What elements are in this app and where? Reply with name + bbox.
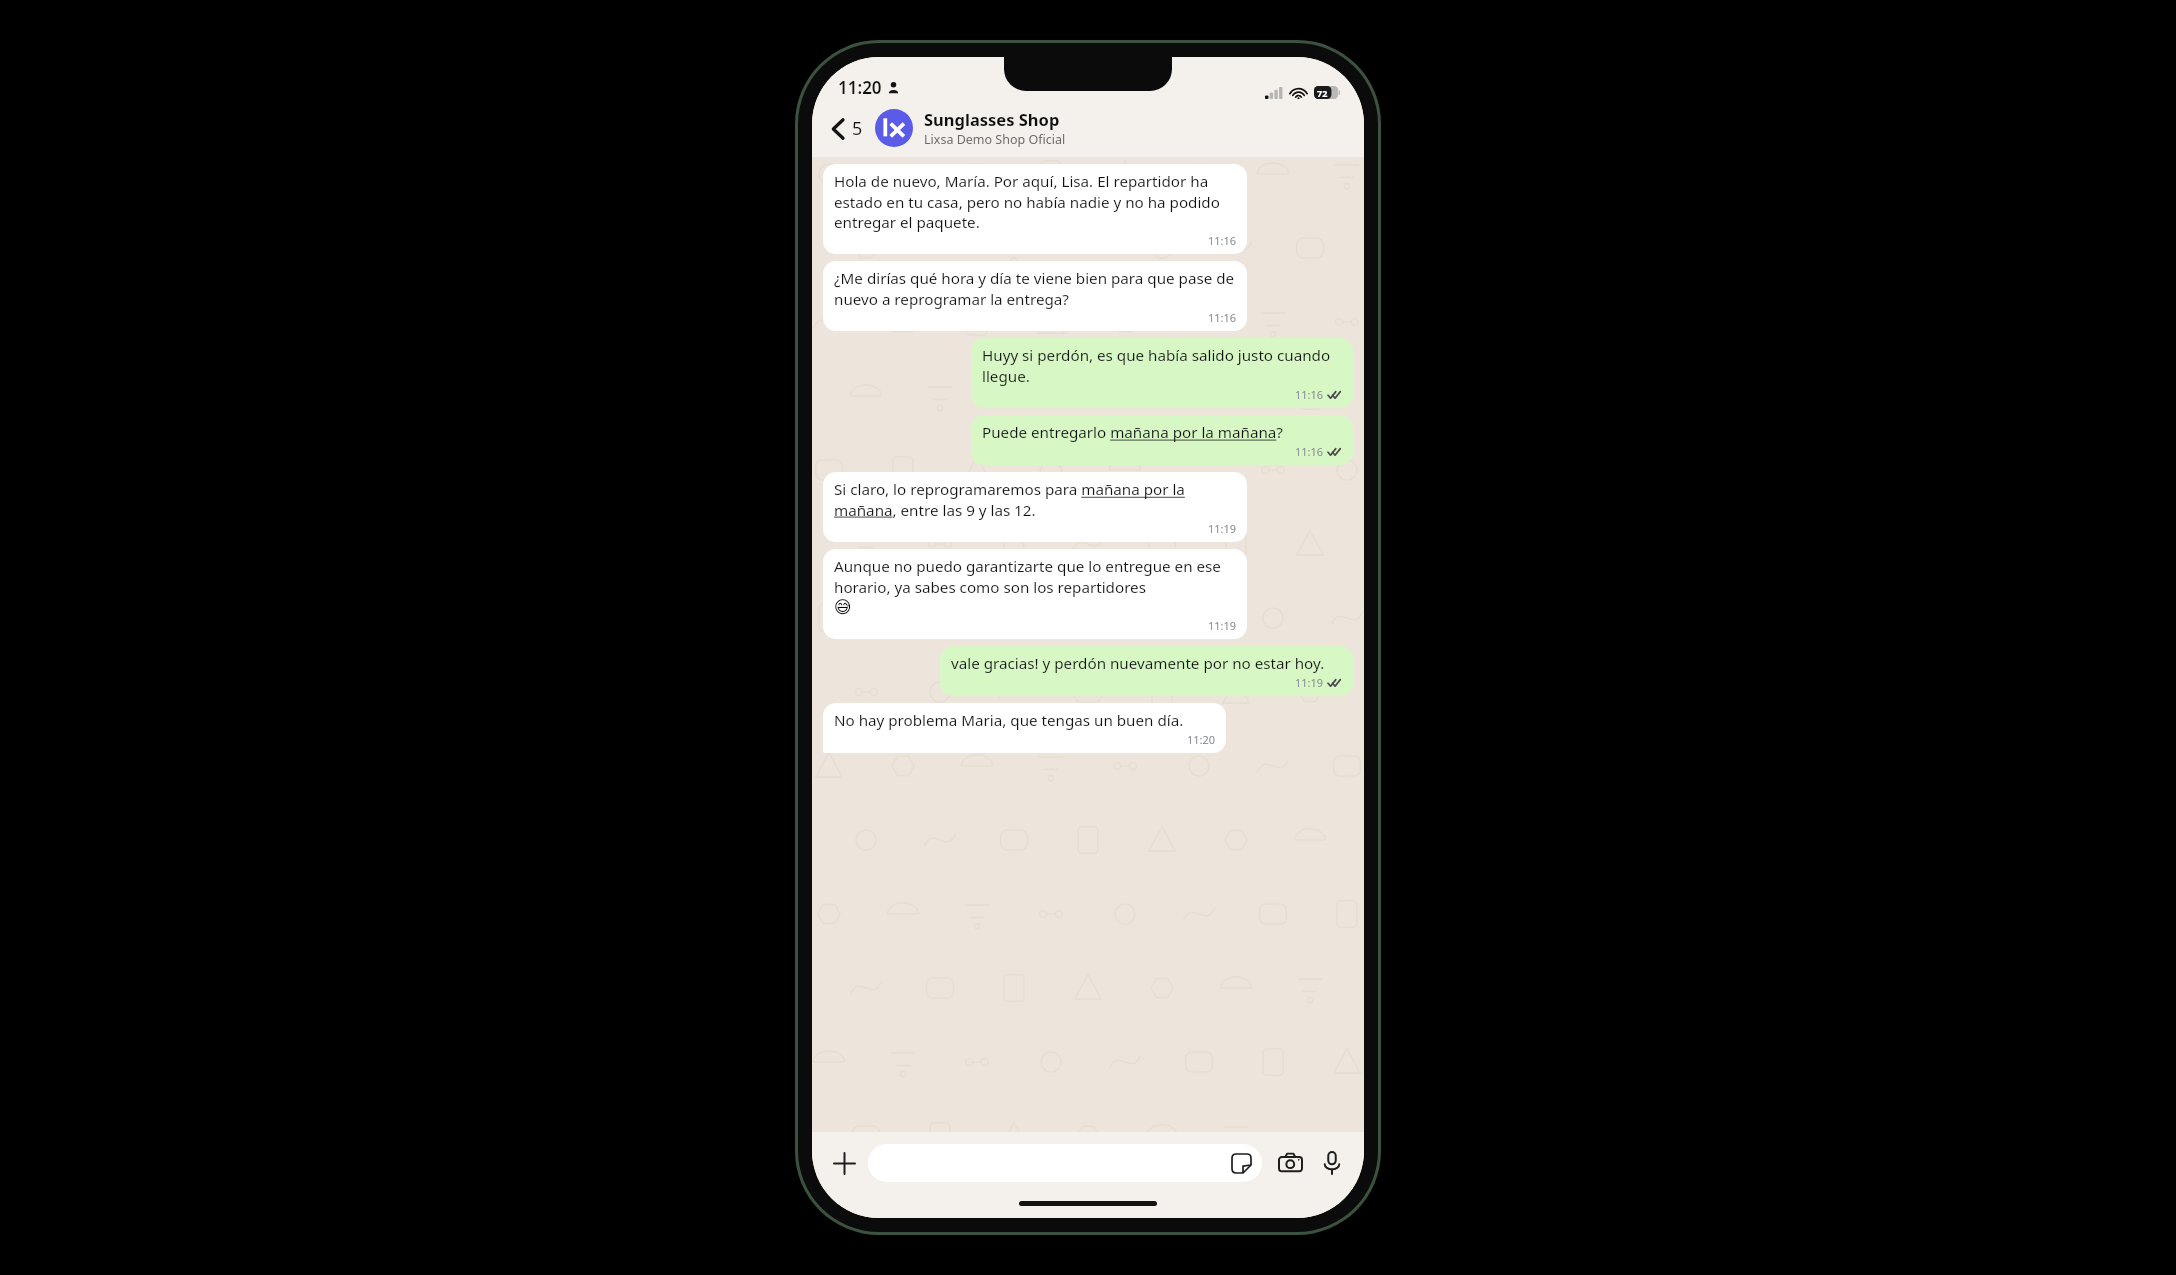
staticText: 11:16 [1208,310,1237,325]
button[interactable]: Attach [826,1145,862,1181]
staticText: 11:19 [1208,521,1237,536]
staticText: 11:20 [838,76,882,99]
staticText: Hola de nuevo, María. Por aquí, Lisa. El… [834,171,1237,232]
staticText: Lixsa Demo Shop Oficial [924,131,1066,148]
staticText: 11:16 [1295,387,1324,402]
button[interactable] [868,1144,1262,1182]
button[interactable]: Voice message [1314,1145,1350,1181]
button[interactable]: Puede entregarlo mañana por la mañana? [971,415,1353,465]
staticText: Puede entregarlo mañana por la mañana? [982,422,1283,443]
staticText: 11:19 [1295,675,1324,690]
staticText: No hay problema Maria, que tengas un bue… [834,710,1184,731]
button[interactable]: Huyy si perdón, es que había salido just… [971,338,1353,408]
staticText: 11:20 [1187,732,1216,747]
staticText: 5 [852,116,863,141]
staticText: 11:16 [1295,444,1324,459]
button[interactable]: Camera [1272,1145,1308,1181]
button[interactable]: vale gracias! y perdón nuevamente por no… [940,646,1353,696]
button[interactable]: No hay problema Maria, que tengas un bue… [823,703,1226,753]
staticText: Si claro, lo reprogramaremos para mañana… [834,479,1237,520]
staticText: vale gracias! y perdón nuevamente por no… [951,653,1325,674]
button[interactable]: Sunglasses Shop profile [875,109,913,147]
staticText: Sunglasses Shop [924,108,1060,130]
button[interactable]: ¿Me dirías qué hora y día te viene bien … [823,261,1247,331]
staticText: Huyy si perdón, es que había salido just… [982,345,1343,386]
button[interactable]: Back, 5 unread [826,110,869,147]
staticText: 11:16 [1208,233,1237,248]
staticText: 😅 [834,597,852,617]
staticText: Aunque no puedo garantizarte que lo entr… [834,556,1237,597]
staticText: 11:19 [1208,618,1237,633]
staticText: ¿Me dirías qué hora y día te viene bien … [834,268,1237,309]
button[interactable]: Aunque no puedo garantizarte que lo entr… [823,549,1247,639]
button[interactable]: Hola de nuevo, María. Por aquí, Lisa. El… [823,164,1247,254]
button[interactable]: Sunglasses Shop [924,108,1348,148]
button[interactable]: Si claro, lo reprogramaremos para mañana… [823,472,1247,542]
staticText: 72 [1317,87,1328,99]
